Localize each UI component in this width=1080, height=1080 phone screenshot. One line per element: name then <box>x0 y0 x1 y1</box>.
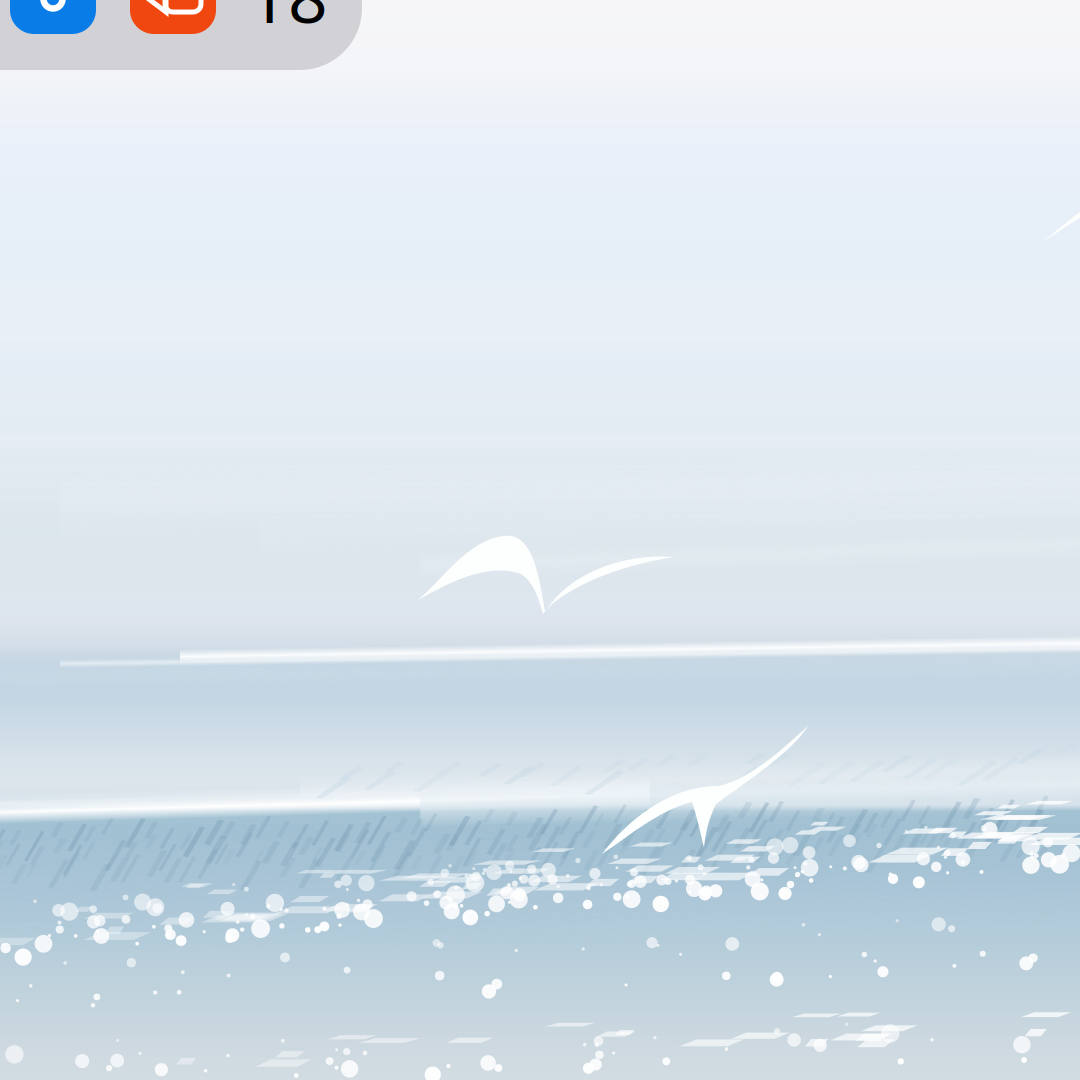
button[interactable]: Camera <box>10 0 96 34</box>
staticText: 18 <box>248 0 328 42</box>
button[interactable]: Video <box>130 0 216 34</box>
